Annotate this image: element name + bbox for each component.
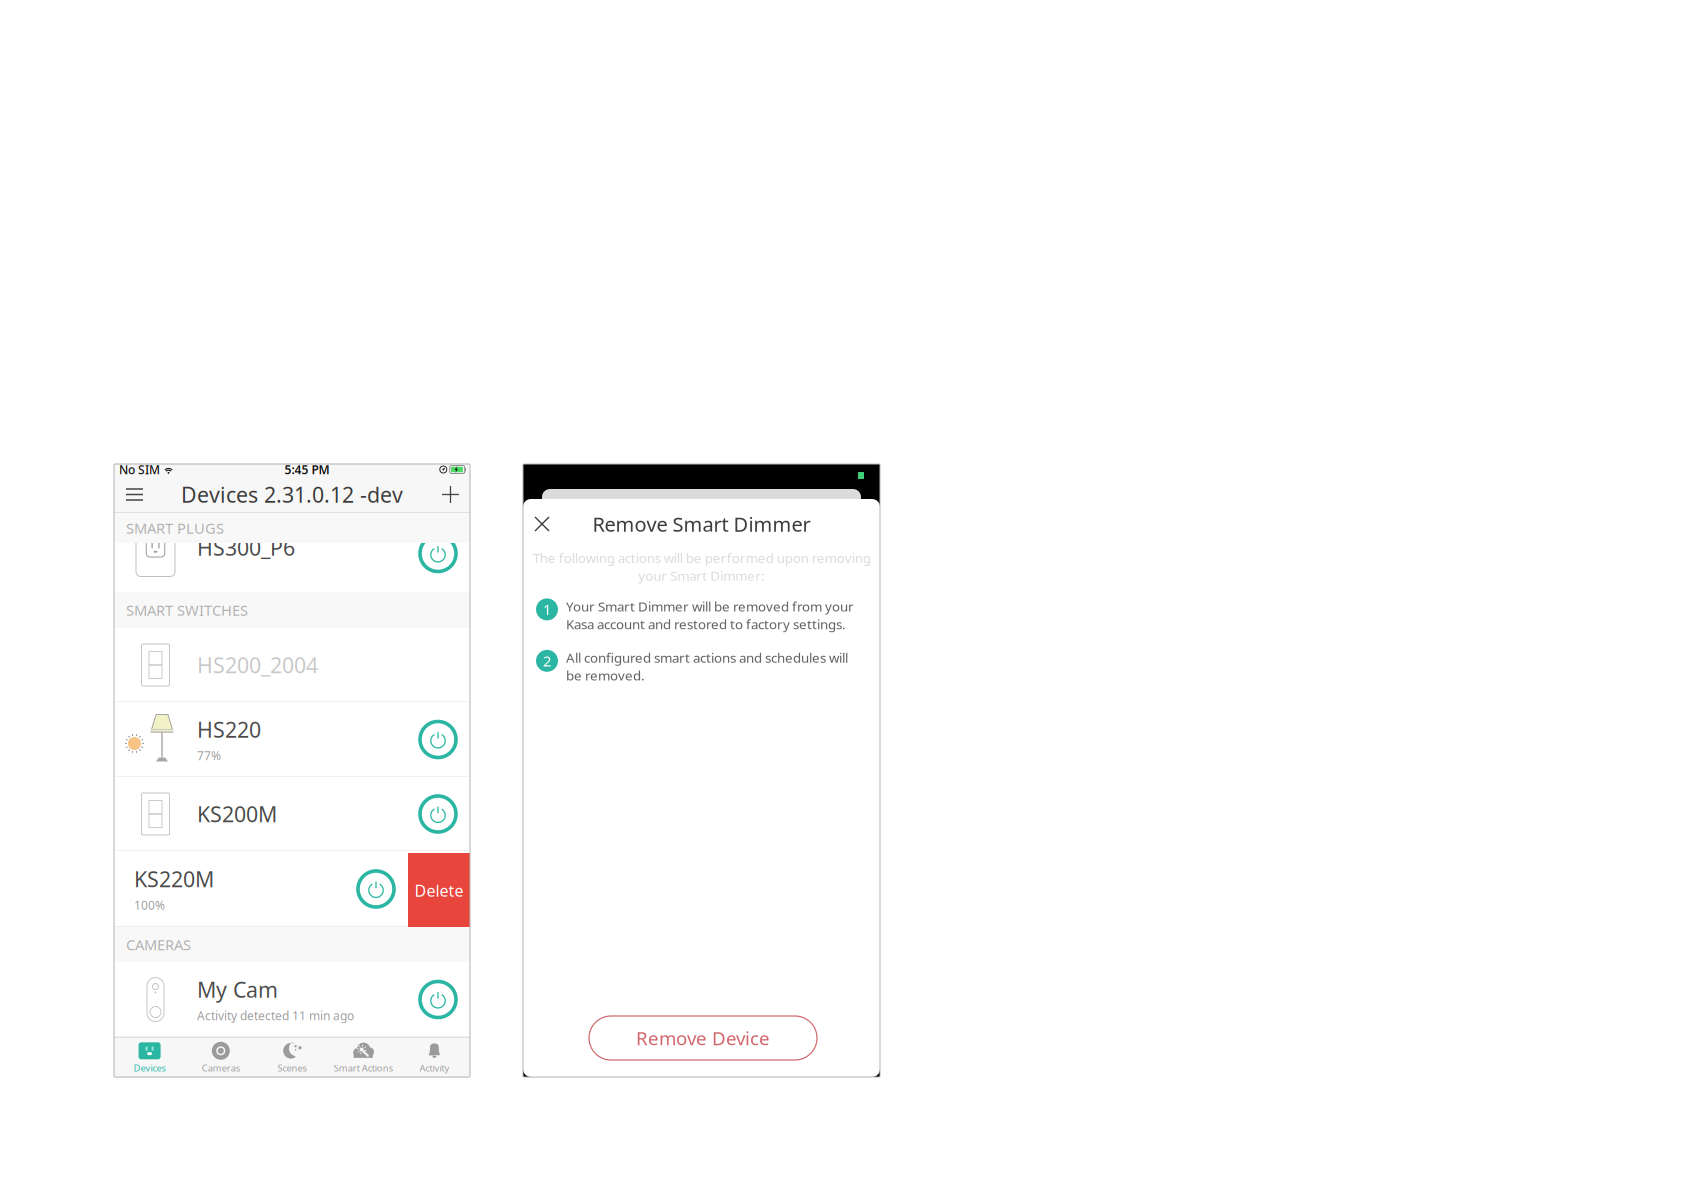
button[interactable]: Cameras bbox=[185, 1037, 256, 1078]
staticText: 2 bbox=[543, 651, 551, 671]
button[interactable]: Close bbox=[523, 508, 559, 540]
button[interactable]: Power bbox=[416, 531, 460, 575]
staticText: Remove Smart Dimmer bbox=[592, 511, 810, 537]
staticText: No SIM bbox=[119, 461, 160, 477]
button[interactable]: Devices bbox=[114, 1037, 185, 1078]
button[interactable]: Smart Actions bbox=[328, 1037, 399, 1078]
staticText: HS300_P6 bbox=[197, 533, 295, 562]
button[interactable]: Remove Device bbox=[589, 1016, 817, 1060]
staticText: 1 bbox=[543, 600, 551, 619]
button[interactable]: Menu bbox=[118, 479, 151, 510]
staticText: Activity bbox=[419, 1062, 449, 1074]
staticText: The following actions will be performed … bbox=[532, 549, 870, 584]
staticText: Scenes bbox=[277, 1062, 306, 1074]
staticText: 5:45 PM bbox=[284, 461, 329, 477]
button[interactable]: Power bbox=[416, 977, 460, 1021]
staticText: KS200M bbox=[197, 800, 277, 828]
staticText: CAMERAS bbox=[126, 935, 191, 954]
button[interactable]: Power bbox=[416, 792, 460, 836]
staticText: All configured smart actions and schedul… bbox=[566, 649, 848, 684]
staticText: HS200_2004 bbox=[197, 651, 318, 679]
staticText: My Cam bbox=[197, 975, 278, 1004]
staticText: Devices 2.31.0.12 -dev bbox=[181, 480, 403, 509]
button[interactable]: KS200M bbox=[114, 777, 470, 851]
button[interactable]: HS220 bbox=[114, 702, 470, 777]
button[interactable]: Activity bbox=[399, 1037, 470, 1078]
button[interactable]: Add device bbox=[435, 479, 466, 510]
staticText: Activity detected 11 min ago bbox=[197, 1008, 354, 1024]
staticText: Cameras bbox=[202, 1062, 240, 1074]
button[interactable]: Power bbox=[416, 717, 460, 761]
staticText: Delete bbox=[414, 880, 463, 901]
button[interactable]: HS300_P6 bbox=[114, 513, 470, 590]
button[interactable]: Delete bbox=[408, 853, 470, 928]
staticText: Remove Device bbox=[636, 1026, 770, 1050]
staticText: 100% bbox=[134, 897, 165, 913]
button[interactable]: Scenes bbox=[256, 1037, 328, 1078]
staticText: Devices bbox=[134, 1062, 166, 1074]
button[interactable]: My Cam bbox=[114, 962, 470, 1037]
staticText: HS220 bbox=[197, 715, 261, 744]
staticText: Smart Actions bbox=[334, 1062, 393, 1074]
staticText: Your Smart Dimmer will be removed from y… bbox=[566, 597, 854, 633]
staticText: SMART SWITCHES bbox=[126, 600, 248, 620]
button[interactable]: Power bbox=[354, 867, 398, 911]
staticText: 77% bbox=[197, 748, 221, 764]
button[interactable]: HS200_2004 bbox=[114, 628, 470, 702]
staticText: KS220M bbox=[134, 865, 214, 893]
staticText: SMART PLUGS bbox=[126, 518, 224, 538]
